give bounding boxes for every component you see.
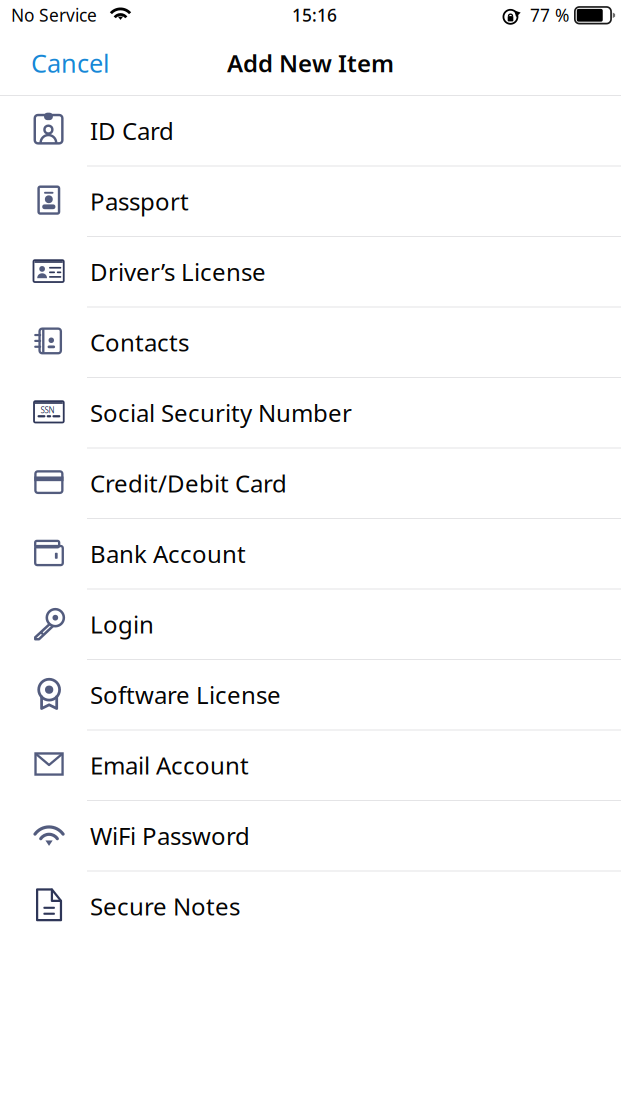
button[interactable]: Credit/Debit Card <box>0 448 621 519</box>
staticText: Credit/Debit Card <box>90 467 287 499</box>
staticText: Email Account <box>90 749 249 781</box>
staticText: Passport <box>90 185 189 217</box>
staticText: Software License <box>90 679 281 711</box>
button[interactable]: WiFi Password <box>0 801 621 871</box>
staticText: No Service <box>11 3 97 26</box>
button[interactable]: Driver’s License <box>0 237 621 307</box>
button[interactable]: Login <box>0 589 621 660</box>
button[interactable]: Email Account <box>0 730 621 801</box>
staticText: Contacts <box>90 326 189 358</box>
staticText: Driver’s License <box>90 256 266 288</box>
staticText: Login <box>90 608 154 640</box>
staticText: ID Card <box>90 115 174 147</box>
button[interactable]: Bank Account <box>0 519 621 589</box>
staticText: 77 % <box>530 3 569 26</box>
staticText: Cancel <box>31 46 110 80</box>
button[interactable]: Passport <box>0 166 621 237</box>
button[interactable]: SSN <box>0 378 621 448</box>
staticText: WiFi Password <box>90 820 250 852</box>
button[interactable]: Software License <box>0 660 621 730</box>
button[interactable]: ID Card <box>0 96 621 166</box>
staticText: Bank Account <box>90 538 246 570</box>
staticText: Add New Item <box>227 47 394 79</box>
button[interactable]: Cancel <box>21 38 120 88</box>
staticText: 15:16 <box>292 3 337 26</box>
button[interactable]: Secure Notes <box>0 871 621 941</box>
staticText: Secure Notes <box>90 890 240 922</box>
staticText: SSN <box>40 405 54 415</box>
button[interactable]: Contacts <box>0 307 621 378</box>
staticText: Social Security Number <box>90 397 352 429</box>
